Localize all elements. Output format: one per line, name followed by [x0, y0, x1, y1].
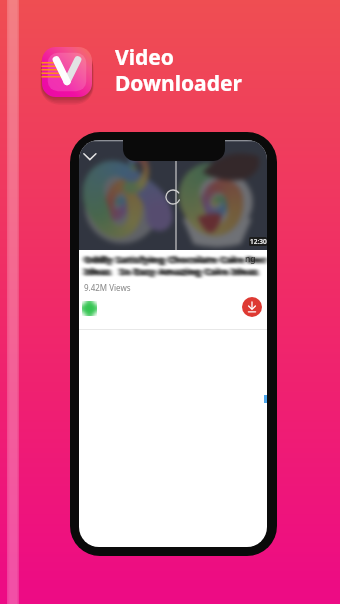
staticText: Video — [115, 43, 174, 72]
staticText: ng — [245, 253, 256, 265]
staticText: 12:30 — [250, 237, 267, 246]
staticText: Oddly Satisfying Chocolate Cake Decorati… — [84, 253, 267, 266]
button[interactable]: Collapse — [79, 145, 101, 167]
staticText: Ideas So Easy Amazing Cake Ideas — [83, 264, 258, 277]
staticText: Ideas So Easy Amazing Cake Ideas — [84, 265, 259, 278]
button[interactable]: Download — [242, 297, 262, 317]
staticText: Downloader — [115, 69, 242, 98]
staticText: Oddly Satisfying Chocolate Cake Decorati… — [84, 253, 267, 266]
staticText: Oddly Satisfying Chocolate Cake Decorati… — [83, 252, 267, 265]
staticText: Ideas So Easy Amazing Cake Ideas — [84, 265, 259, 278]
staticText: 9.42M Views — [84, 282, 131, 293]
staticText: Oddly Satisfying Chocolate Cake Decorati… — [85, 254, 267, 267]
staticText: Ideas So Easy Amazing Cake Ideas — [85, 266, 260, 279]
